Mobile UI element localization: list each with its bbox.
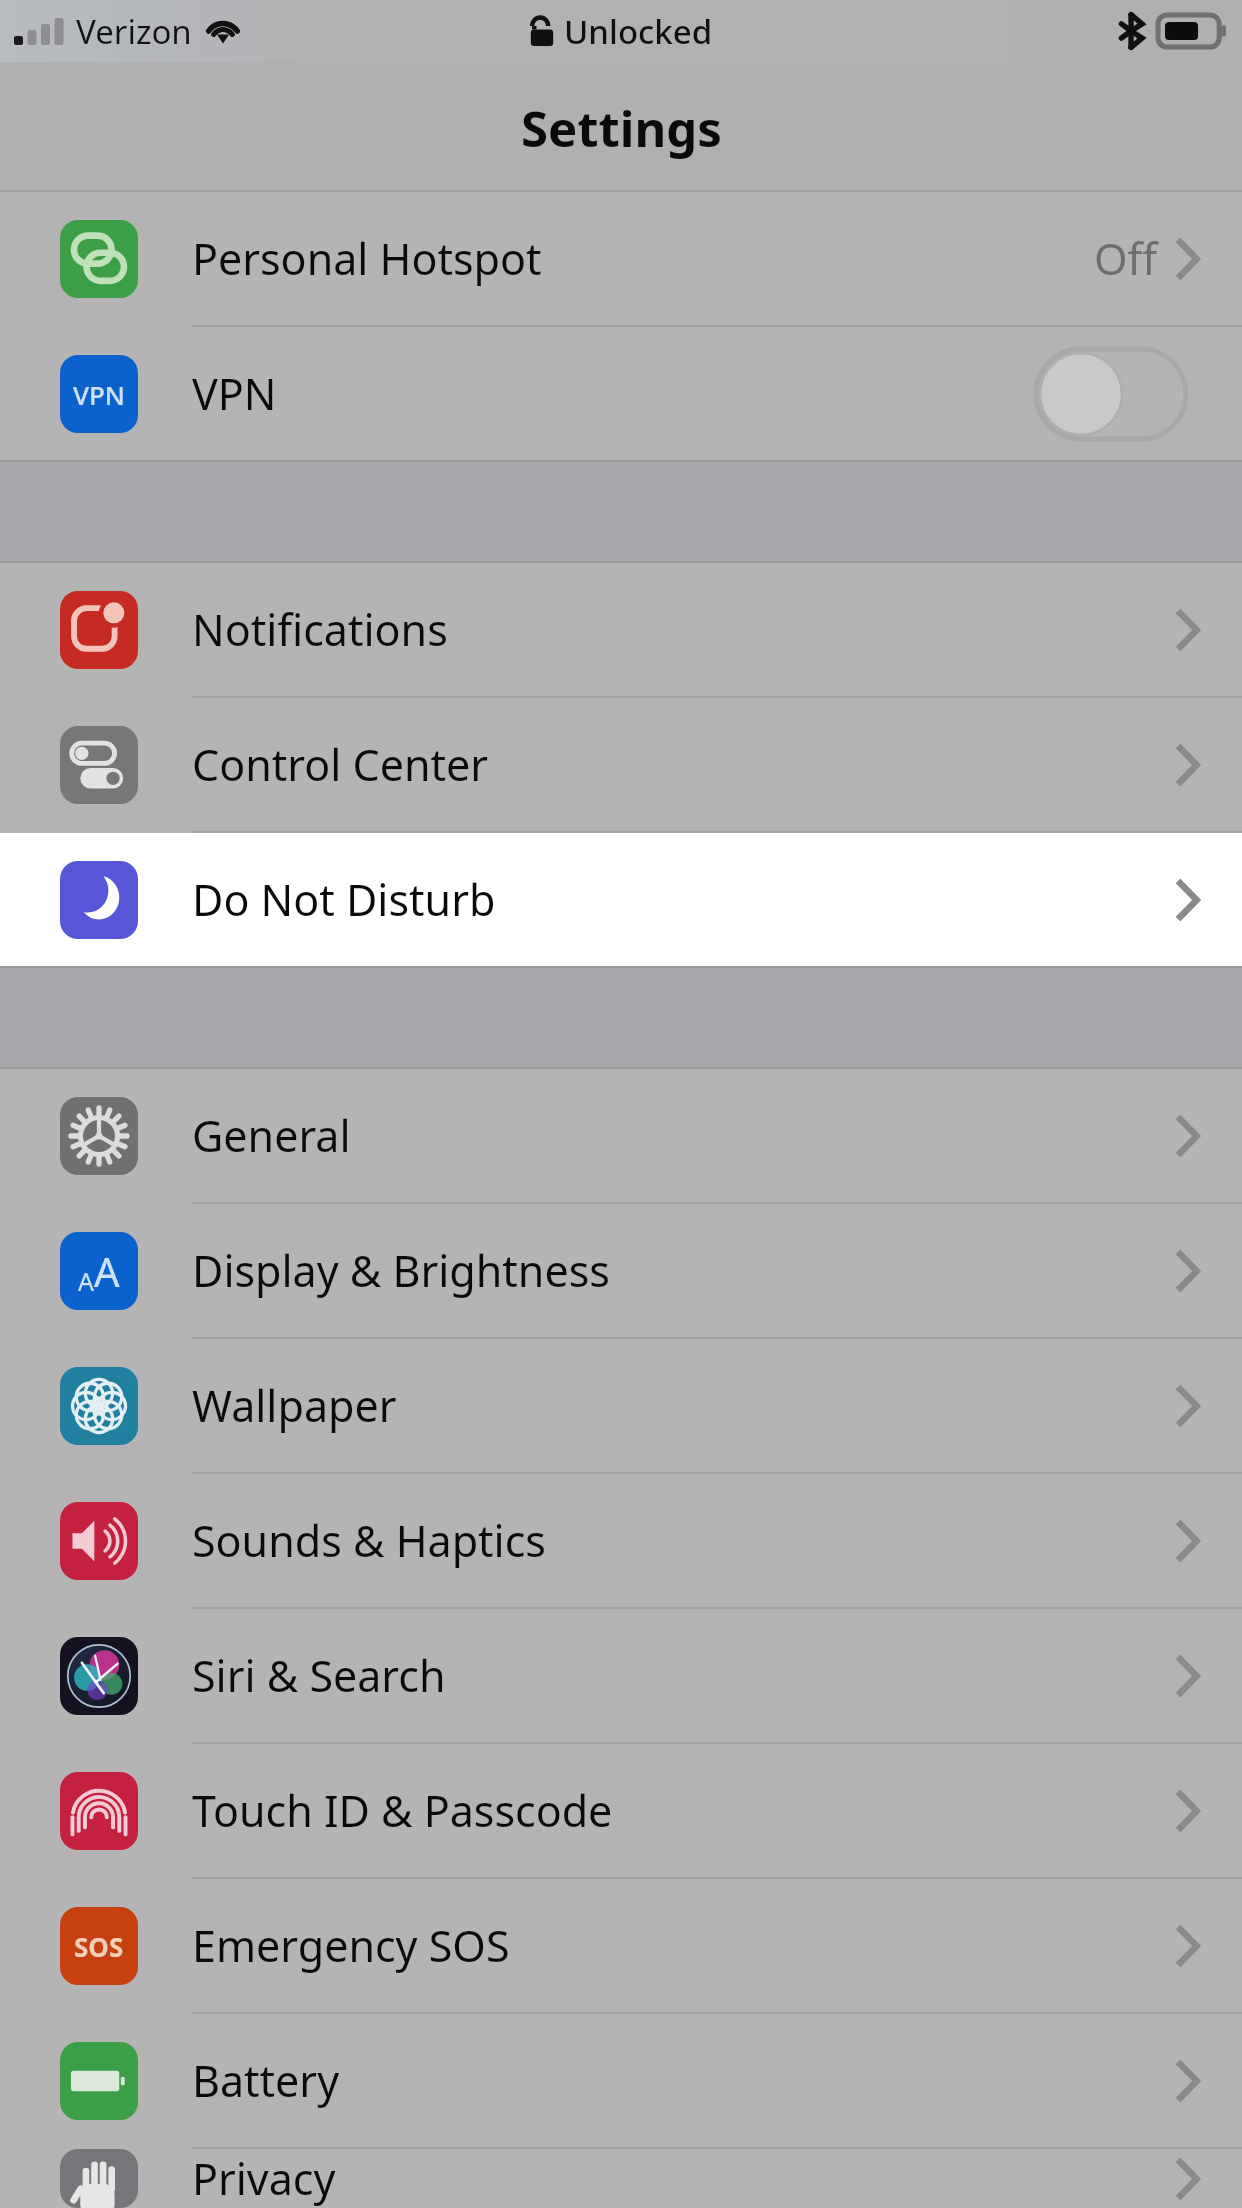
staticText: SOS	[74, 1929, 124, 1964]
staticText: Privacy	[192, 2149, 1176, 2208]
button[interactable]: Privacy	[0, 2149, 1242, 2208]
staticText: Display & Brightness	[192, 1241, 1176, 1300]
staticText: Notifications	[192, 600, 1176, 659]
staticText: Emergency SOS	[192, 1916, 1176, 1975]
staticText: General	[192, 1106, 1176, 1165]
staticText: Battery	[192, 2051, 1176, 2110]
button[interactable]: Wallpaper	[0, 1339, 1242, 1472]
button[interactable]: SOS	[0, 1879, 1242, 2012]
staticText: Control Center	[192, 735, 1176, 794]
button[interactable]: General	[0, 1069, 1242, 1202]
staticText: VPN	[192, 364, 1036, 423]
staticText: Verizon	[76, 9, 192, 54]
button[interactable]: A	[0, 1204, 1242, 1337]
staticText: Siri & Search	[192, 1646, 1176, 1705]
staticText: Do Not Disturb	[192, 870, 1176, 929]
button[interactable]: Notifications	[0, 563, 1242, 696]
staticText: A	[94, 1244, 120, 1298]
button[interactable]: Siri & Search	[0, 1609, 1242, 1742]
button[interactable]: Battery	[0, 2014, 1242, 2147]
staticText: Personal Hotspot	[192, 229, 1094, 288]
staticText: Touch ID & Passcode	[192, 1781, 1176, 1840]
staticText: Sounds & Haptics	[192, 1511, 1176, 1570]
staticText: Settings	[521, 95, 722, 162]
button[interactable]: VPN	[0, 327, 1242, 460]
button[interactable]: Sounds & Haptics	[0, 1474, 1242, 1607]
button[interactable]: Do Not Disturb	[0, 833, 1242, 966]
button[interactable]: Personal Hotspot	[0, 192, 1242, 325]
staticText: Unlocked	[564, 9, 713, 54]
staticText: Off	[1094, 229, 1158, 288]
staticText: VPN	[73, 377, 126, 412]
staticText: Wallpaper	[192, 1376, 1176, 1435]
button[interactable]: Touch ID & Passcode	[0, 1744, 1242, 1877]
staticText: A	[78, 1264, 94, 1298]
button[interactable]: Control Center	[0, 698, 1242, 831]
